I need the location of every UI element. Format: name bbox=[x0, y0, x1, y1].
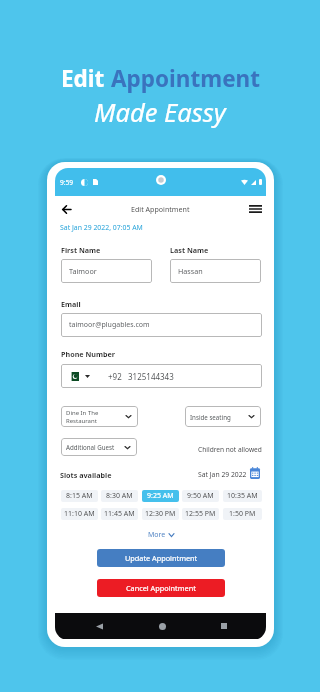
staticText: 10:35 AM bbox=[227, 491, 258, 501]
staticText: Children not allowed bbox=[198, 445, 262, 454]
staticText: Last Name bbox=[170, 245, 209, 255]
button[interactable]: Back bbox=[96, 623, 103, 630]
staticText: Taimoor bbox=[69, 266, 97, 276]
button[interactable]: Cancel Appointment bbox=[97, 579, 225, 597]
button[interactable]: Hassan bbox=[170, 259, 261, 283]
button[interactable]: +92 bbox=[61, 364, 262, 388]
staticText: More bbox=[148, 530, 166, 540]
staticText: Slots available bbox=[60, 470, 112, 480]
staticText: Dine In The Restaurant bbox=[66, 409, 99, 425]
button[interactable]: Dine In The Restaurant bbox=[61, 406, 138, 427]
staticText: Inside seating bbox=[190, 413, 231, 421]
staticText: Email bbox=[61, 299, 81, 309]
staticText: Edit bbox=[61, 63, 111, 94]
staticText: Update Appointment bbox=[125, 553, 198, 563]
button[interactable]: 10:35 AM bbox=[223, 490, 262, 502]
staticText: Phone Number bbox=[61, 349, 116, 359]
staticText: +92 bbox=[108, 371, 122, 382]
button[interactable]: 11:10 AM bbox=[61, 508, 98, 520]
staticText: Cancel Appointment bbox=[126, 583, 196, 593]
button[interactable]: Menu bbox=[247, 201, 263, 217]
staticText: 1:50 PM bbox=[229, 509, 256, 519]
staticText: 11:45 AM bbox=[104, 509, 135, 519]
button[interactable]: Taimoor bbox=[61, 259, 152, 283]
staticText: Sat Jan 29 2022 bbox=[198, 470, 247, 479]
staticText: Appointment bbox=[111, 63, 260, 94]
staticText: 12:30 PM bbox=[145, 509, 176, 519]
button[interactable]: 9:50 AM bbox=[182, 490, 219, 502]
button[interactable]: 8:15 AM bbox=[61, 490, 98, 502]
staticText: 9:59 bbox=[60, 178, 74, 187]
staticText: 9:25 AM bbox=[147, 491, 174, 501]
button[interactable]: 11:45 AM bbox=[101, 508, 138, 520]
button[interactable]: Inside seating bbox=[185, 406, 261, 427]
button[interactable]: 12:30 PM bbox=[142, 508, 179, 520]
staticText: Sat Jan 29 2022, 07:05 AM bbox=[60, 223, 143, 232]
staticText: Hassan bbox=[178, 266, 203, 276]
staticText: Made Eassy bbox=[94, 95, 226, 130]
staticText: 9:50 AM bbox=[187, 491, 214, 501]
button[interactable]: 9:25 AM bbox=[142, 490, 179, 502]
staticText: taimoor@plugables.com bbox=[69, 320, 150, 330]
button[interactable]: taimoor@plugables.com bbox=[61, 313, 262, 337]
button[interactable]: 1:50 PM bbox=[223, 508, 262, 520]
button[interactable]: More bbox=[148, 530, 174, 540]
staticText: 8:15 AM bbox=[66, 491, 93, 501]
button[interactable]: Pick date bbox=[250, 467, 260, 479]
button[interactable]: 12:55 PM bbox=[182, 508, 219, 520]
button[interactable]: Home bbox=[159, 623, 166, 630]
button[interactable]: Back bbox=[58, 201, 74, 217]
staticText: Edit Appointment bbox=[131, 204, 190, 214]
staticText: 3125144343 bbox=[128, 371, 174, 382]
button[interactable]: 8:30 AM bbox=[101, 490, 138, 502]
staticText: Additional Guest bbox=[66, 443, 115, 451]
staticText: First Name bbox=[61, 245, 101, 255]
staticText: 12:55 PM bbox=[185, 509, 216, 519]
button[interactable]: Update Appointment bbox=[97, 549, 225, 567]
button[interactable]: Additional Guest bbox=[61, 438, 137, 456]
staticText: 8:30 AM bbox=[106, 491, 133, 501]
staticText: 11:10 AM bbox=[64, 509, 95, 519]
